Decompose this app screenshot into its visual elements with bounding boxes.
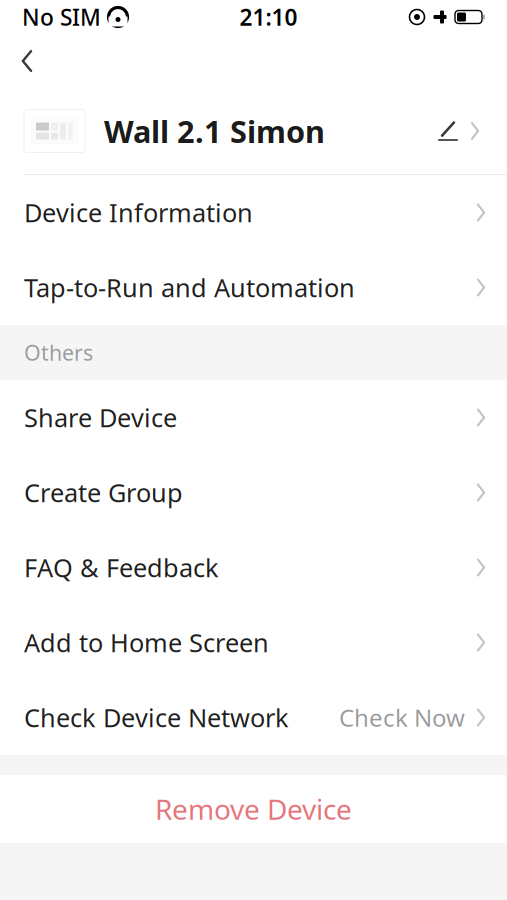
- staticText: Check Device Network: [24, 701, 289, 734]
- staticText: Share Device: [24, 401, 177, 434]
- staticText: Tap-to-Run and Automation: [24, 271, 355, 304]
- button[interactable]: Remove Device: [0, 775, 507, 843]
- button[interactable]: Create Group: [0, 455, 507, 530]
- staticText: Wall 2.1 Simon: [104, 111, 325, 151]
- staticText: Check Now: [339, 702, 465, 733]
- staticText: 21:10: [239, 2, 297, 32]
- staticText: Create Group: [24, 476, 183, 509]
- button[interactable]: Back: [0, 38, 54, 84]
- staticText: Remove Device: [155, 790, 352, 828]
- staticText: FAQ & Feedback: [24, 551, 219, 584]
- button[interactable]: Share Device: [0, 380, 507, 455]
- button[interactable]: Rename device: [425, 104, 493, 158]
- staticText: Add to Home Screen: [24, 626, 269, 659]
- button[interactable]: FAQ & Feedback: [0, 530, 507, 605]
- button[interactable]: Check Device Network: [0, 680, 507, 755]
- button[interactable]: Tap-to-Run and Automation: [0, 250, 507, 325]
- staticText: Device Information: [24, 196, 253, 229]
- button[interactable]: Add to Home Screen: [0, 605, 507, 680]
- button[interactable]: Device Information: [0, 175, 507, 250]
- staticText: Others: [24, 338, 93, 367]
- staticText: No SIM: [22, 2, 101, 32]
